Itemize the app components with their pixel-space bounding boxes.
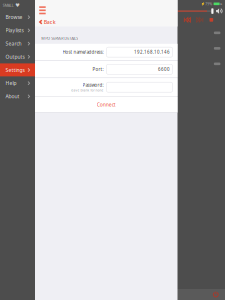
- button[interactable]: About: [0, 90, 35, 103]
- button[interactable]: Connect: [35, 97, 177, 112]
- staticText: 192.168.10.146: [134, 49, 170, 55]
- staticText: Connect: [97, 101, 116, 108]
- staticText: Settings: [5, 67, 24, 73]
- staticText: Back: [44, 18, 56, 26]
- staticText: Playlists: [5, 27, 23, 34]
- button[interactable]: Help: [0, 77, 35, 90]
- staticText: Michael Jackson • Thriller: [6, 30, 60, 36]
- staticText: leave blank for none: [70, 88, 103, 92]
- button[interactable]: Playlists: [0, 24, 35, 37]
- button[interactable]: Search: [0, 37, 35, 50]
- staticText: MPD SERVER DETAILS: [41, 35, 78, 41]
- staticText: 79%: [205, 1, 212, 6]
- staticText: ⚡: [200, 2, 204, 6]
- staticText: Outputs: [5, 53, 24, 60]
- staticText: Host name/address:: [62, 49, 103, 55]
- staticText: 6600: [158, 66, 170, 72]
- staticText: Browse: [5, 14, 22, 20]
- staticText: About: [5, 93, 19, 100]
- staticText: Password:: [82, 82, 103, 88]
- staticText: Frédéric Chopin — Nocturne in E♭ maj.def: [6, 61, 98, 67]
- button[interactable]: Back: [35, 17, 56, 26]
- staticText: Port:: [92, 66, 103, 72]
- staticText: ♥: [15, 2, 20, 8]
- button[interactable]: Browse: [0, 11, 35, 24]
- button[interactable]: Outputs: [0, 50, 35, 63]
- staticText: Help: [5, 80, 16, 86]
- button[interactable]: Settings: [0, 63, 35, 77]
- staticText: Search: [5, 40, 21, 47]
- staticText: Queen — Good Old-Fashioned Lover Boy: [6, 45, 96, 51]
- staticText: SMALL: [3, 3, 14, 8]
- button[interactable]: Menu: [35, 0, 55, 17]
- staticText: ▸: [220, 2, 222, 6]
